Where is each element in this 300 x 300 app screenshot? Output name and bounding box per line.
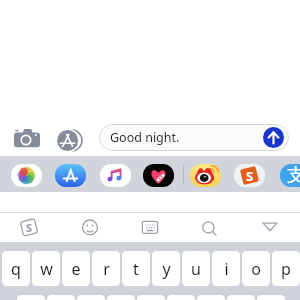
button[interactable]: q bbox=[2, 251, 30, 286]
button[interactable]: Good night. bbox=[99, 124, 289, 151]
staticText: q bbox=[11, 258, 21, 280]
button[interactable]: Send bbox=[263, 127, 284, 148]
button[interactable]: e bbox=[62, 251, 90, 286]
button[interactable]: w bbox=[32, 251, 60, 286]
staticText: y bbox=[162, 258, 171, 280]
staticText: e bbox=[71, 258, 81, 280]
button[interactable]: Photos bbox=[11, 164, 42, 187]
button[interactable]: o bbox=[242, 251, 270, 286]
button[interactable]: Digital Touch bbox=[143, 164, 174, 187]
button[interactable]: u bbox=[182, 251, 210, 286]
button[interactable]: Alipay bbox=[280, 164, 300, 187]
button[interactable]: Hide keyboard bbox=[255, 213, 285, 242]
staticText: o bbox=[251, 258, 261, 280]
button[interactable]: Sogou bbox=[234, 164, 265, 187]
button[interactable]: Weibo bbox=[190, 164, 221, 187]
button[interactable]: j bbox=[197, 295, 225, 300]
button[interactable]: Emoji bbox=[75, 213, 105, 242]
button[interactable]: p bbox=[272, 251, 300, 286]
button[interactable]: Keyboard bbox=[135, 213, 165, 242]
staticText: Good night. bbox=[110, 129, 180, 146]
button[interactable]: a bbox=[17, 295, 45, 300]
button[interactable]: i bbox=[212, 251, 240, 286]
button[interactable]: App Store bbox=[55, 164, 86, 187]
button[interactable]: d bbox=[77, 295, 105, 300]
staticText: r bbox=[103, 258, 110, 280]
staticText: S bbox=[26, 220, 33, 235]
button[interactable]: Search bbox=[194, 213, 224, 242]
staticText: u bbox=[191, 258, 201, 280]
staticText: i bbox=[224, 258, 229, 280]
staticText: 支 bbox=[287, 164, 300, 187]
staticText: p bbox=[281, 258, 291, 280]
staticText: t bbox=[133, 258, 139, 280]
button[interactable]: Apps bbox=[55, 126, 84, 155]
button[interactable]: r bbox=[92, 251, 120, 286]
button[interactable]: l bbox=[257, 295, 285, 300]
button[interactable]: t bbox=[122, 251, 150, 286]
button[interactable]: g bbox=[137, 295, 165, 300]
button[interactable]: k bbox=[227, 295, 255, 300]
button[interactable]: f bbox=[107, 295, 135, 300]
staticText: S bbox=[246, 167, 254, 185]
button[interactable]: Music bbox=[100, 164, 131, 187]
button[interactable]: Sogou bbox=[14, 213, 44, 242]
staticText: w bbox=[40, 258, 53, 280]
button[interactable]: s bbox=[47, 295, 75, 300]
button[interactable]: Camera bbox=[14, 128, 40, 148]
button[interactable]: y bbox=[152, 251, 180, 286]
button[interactable]: h bbox=[167, 295, 195, 300]
